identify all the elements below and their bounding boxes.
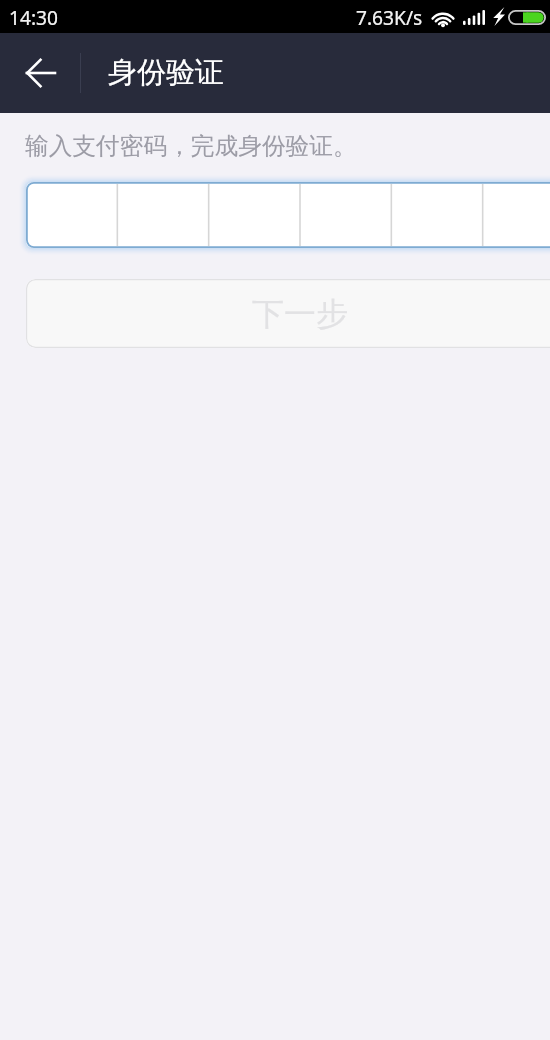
staticText: 下一步 bbox=[252, 294, 348, 334]
button[interactable]: Payment password input bbox=[19, 175, 550, 255]
staticText: 输入支付密码，完成身份验证。 bbox=[25, 131, 357, 161]
button[interactable]: Back bbox=[0, 33, 80, 113]
button[interactable]: 下一步 bbox=[26, 279, 550, 348]
staticText: 14:30 bbox=[9, 4, 59, 30]
staticText: 7.63K/s bbox=[356, 4, 423, 30]
staticText: 身份验证 bbox=[108, 54, 224, 91]
